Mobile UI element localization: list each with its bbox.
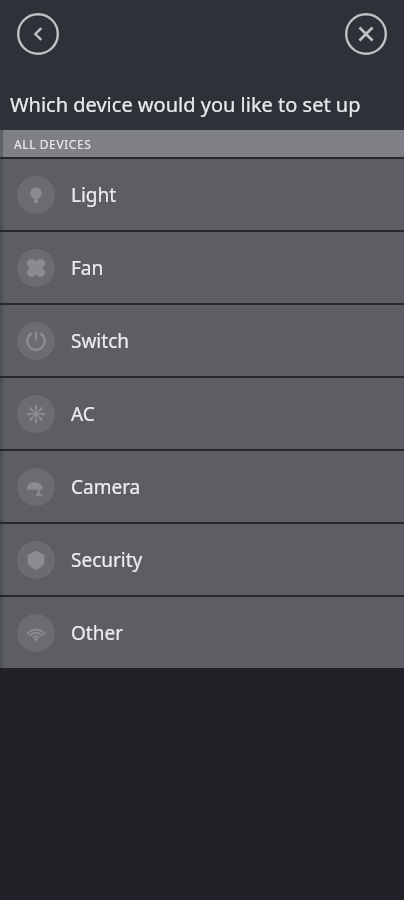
- staticText: Switch: [71, 328, 129, 354]
- button[interactable]: Close: [344, 12, 388, 56]
- staticText: Security: [71, 547, 143, 573]
- button[interactable]: Other: [0, 597, 404, 668]
- button[interactable]: Camera: [0, 451, 404, 522]
- staticText: Light: [71, 182, 117, 208]
- staticText: AC: [71, 401, 95, 427]
- button[interactable]: Switch: [0, 305, 404, 376]
- staticText: Fan: [71, 255, 104, 281]
- button[interactable]: AC: [0, 378, 404, 449]
- button[interactable]: Back: [16, 12, 60, 56]
- button[interactable]: Fan: [0, 232, 404, 303]
- staticText: Which device would you like to set up: [10, 91, 404, 118]
- button[interactable]: Security: [0, 524, 404, 595]
- staticText: ALL DEVICES: [14, 136, 92, 152]
- staticText: Camera: [71, 474, 141, 500]
- staticText: Other: [71, 620, 124, 646]
- button[interactable]: Light: [0, 159, 404, 230]
